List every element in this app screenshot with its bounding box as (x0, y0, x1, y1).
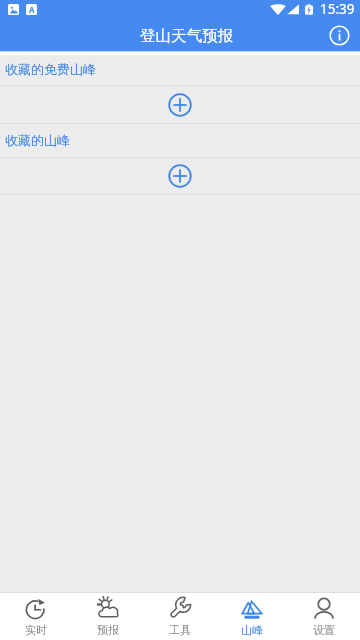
button[interactable]: Add (0, 86, 360, 123)
staticText: 山峰 (241, 623, 263, 637)
staticText: 登山天气预报 (140, 26, 233, 46)
staticText: 收藏的免费山峰 (5, 61, 96, 77)
button[interactable]: 预报 (72, 597, 144, 637)
button[interactable]: 工具 (144, 597, 216, 637)
staticText: 设置 (313, 623, 335, 637)
button[interactable]: 实时 (0, 597, 72, 637)
staticText: 预报 (97, 623, 119, 637)
button[interactable]: Info (326, 22, 352, 48)
staticText: 实时 (25, 623, 47, 637)
button[interactable]: 山峰 (216, 597, 288, 637)
staticText: 收藏的山峰 (5, 132, 70, 148)
staticText: 工具 (169, 623, 191, 637)
staticText: 15:39 (320, 0, 355, 18)
button[interactable]: 设置 (288, 597, 360, 637)
button[interactable]: Add (0, 158, 360, 194)
staticText: A (29, 4, 35, 15)
